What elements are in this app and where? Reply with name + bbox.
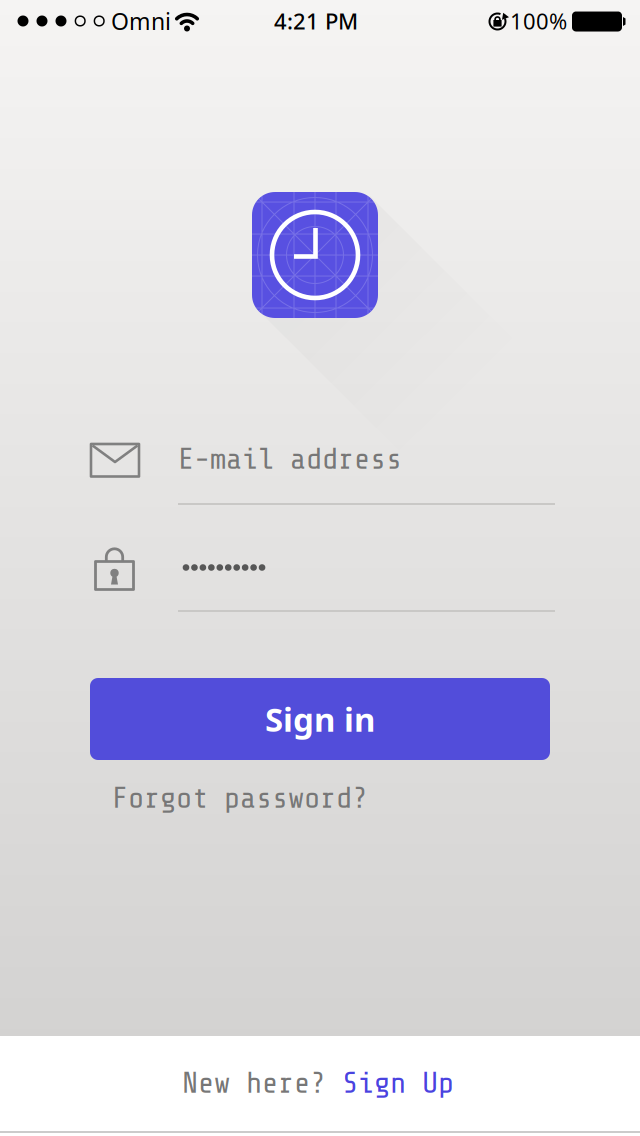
staticText: Sign in [265, 697, 375, 741]
staticText: E-mail address [178, 442, 402, 476]
button[interactable]: Sign in [90, 678, 550, 760]
button[interactable]: Forgot password? [112, 781, 552, 815]
staticText: New here? [182, 1066, 326, 1100]
button[interactable]: New here? [182, 1066, 454, 1100]
staticText: Sign Up [342, 1066, 454, 1100]
staticText: Forgot password? [112, 781, 368, 815]
staticText: 4:21 PM [274, 6, 358, 36]
staticText: 100% [510, 6, 567, 36]
staticText: Omni [111, 6, 171, 36]
